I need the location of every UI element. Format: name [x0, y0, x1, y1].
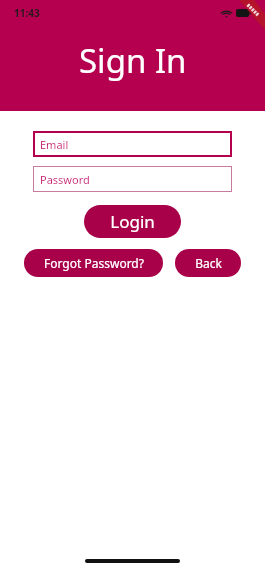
button[interactable]: Email [33, 131, 232, 157]
button[interactable]: Password [33, 166, 232, 192]
staticText: Email [40, 137, 69, 152]
staticText: Back [195, 255, 222, 271]
button[interactable]: Back [175, 249, 241, 277]
staticText: Login [110, 210, 155, 233]
button[interactable]: Forgot Password? [24, 249, 163, 277]
staticText: Sign In [79, 38, 187, 83]
staticText: 11:43 [14, 6, 40, 20]
staticText: Password [40, 172, 90, 187]
staticText: Forgot Password? [44, 255, 144, 271]
button[interactable]: Login [84, 205, 181, 238]
